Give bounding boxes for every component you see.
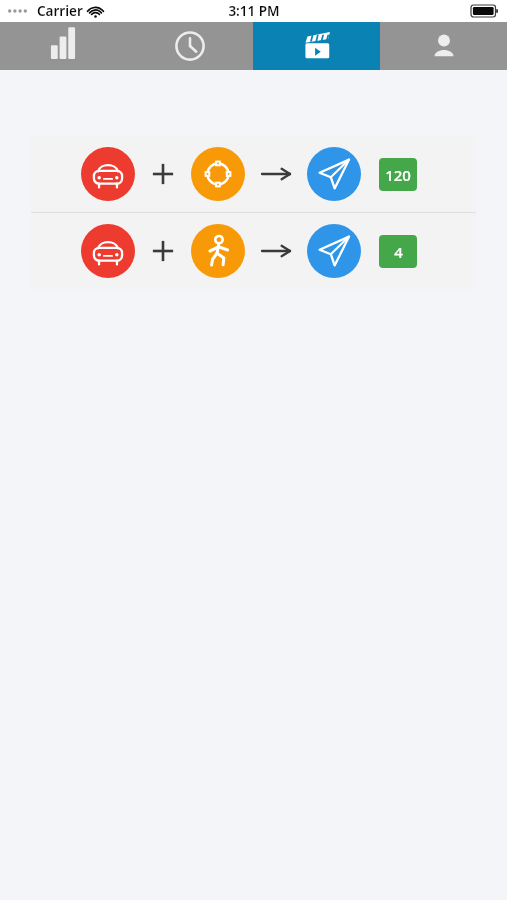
staticText: 120 [385, 165, 411, 185]
staticText: Carrier [37, 2, 83, 20]
button[interactable]: Clips [253, 22, 380, 70]
staticText: 4 [394, 242, 403, 262]
button[interactable]: Send [307, 224, 361, 278]
button[interactable]: 4 [379, 235, 417, 268]
button[interactable]: Send [307, 147, 361, 201]
button[interactable]: Car [31, 136, 476, 212]
button[interactable]: Profile [380, 22, 507, 70]
staticText: 3:11 PM [228, 2, 280, 20]
button[interactable]: Statistics [0, 22, 126, 70]
button[interactable]: Walking [191, 224, 245, 278]
button[interactable]: Zone [191, 147, 245, 201]
button[interactable]: History [126, 22, 253, 70]
button[interactable]: 120 [379, 158, 417, 191]
button[interactable]: Car [81, 224, 135, 278]
button[interactable]: Car [81, 147, 135, 201]
button[interactable]: Car [31, 213, 476, 289]
